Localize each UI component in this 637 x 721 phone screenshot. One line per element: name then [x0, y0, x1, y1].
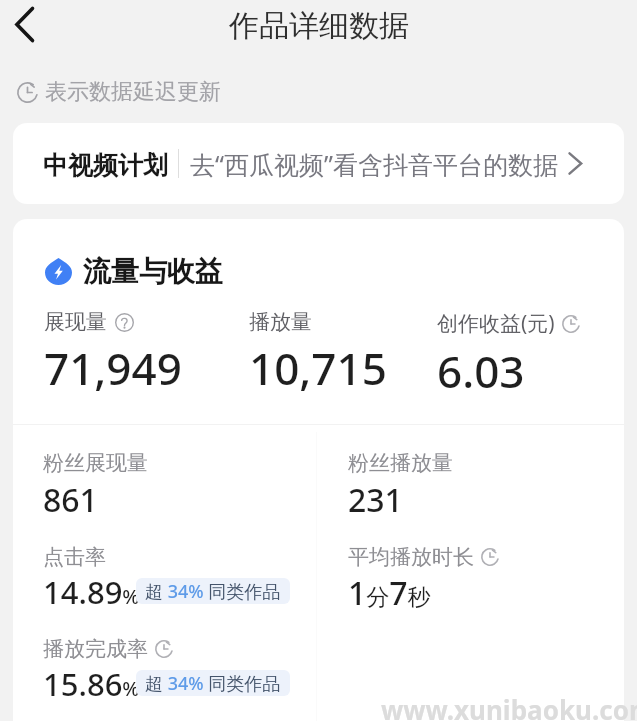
staticText: 表示数据延迟更新: [45, 78, 221, 106]
staticText: 6.03: [437, 341, 525, 401]
staticText: 超 34% 同类作品: [145, 579, 281, 604]
staticText: 14.89%: [43, 571, 140, 613]
staticText: 平均播放时长: [348, 544, 474, 570]
staticText: www.xunibaoku.com: [381, 692, 637, 721]
staticText: 861: [43, 478, 98, 522]
staticText: 231: [348, 478, 403, 522]
staticText: 播放完成率: [43, 636, 148, 662]
staticText: 流量与收益: [83, 254, 223, 289]
staticText: 15.86%: [43, 663, 140, 705]
staticText: 超 34% 同类作品: [145, 671, 281, 696]
staticText: 去“西瓜视频”看含抖音平台的数据: [190, 147, 558, 181]
staticText: 1分7秒: [348, 571, 431, 615]
staticText: 点击率: [43, 544, 106, 570]
staticText: 粉丝播放量: [348, 450, 453, 476]
button[interactable]: Back: [1, 1, 47, 47]
staticText: 创作收益(元): [437, 309, 555, 338]
staticText: 播放量: [249, 309, 312, 335]
staticText: 10,715: [249, 338, 387, 398]
staticText: 中视频计划: [43, 150, 168, 181]
staticText: 粉丝展现量: [43, 450, 148, 476]
staticText: 71,949: [44, 338, 182, 398]
button[interactable]: 中视频计划: [13, 123, 624, 204]
staticText: 展现量: [44, 309, 107, 335]
staticText: 作品详细数据: [229, 7, 409, 45]
